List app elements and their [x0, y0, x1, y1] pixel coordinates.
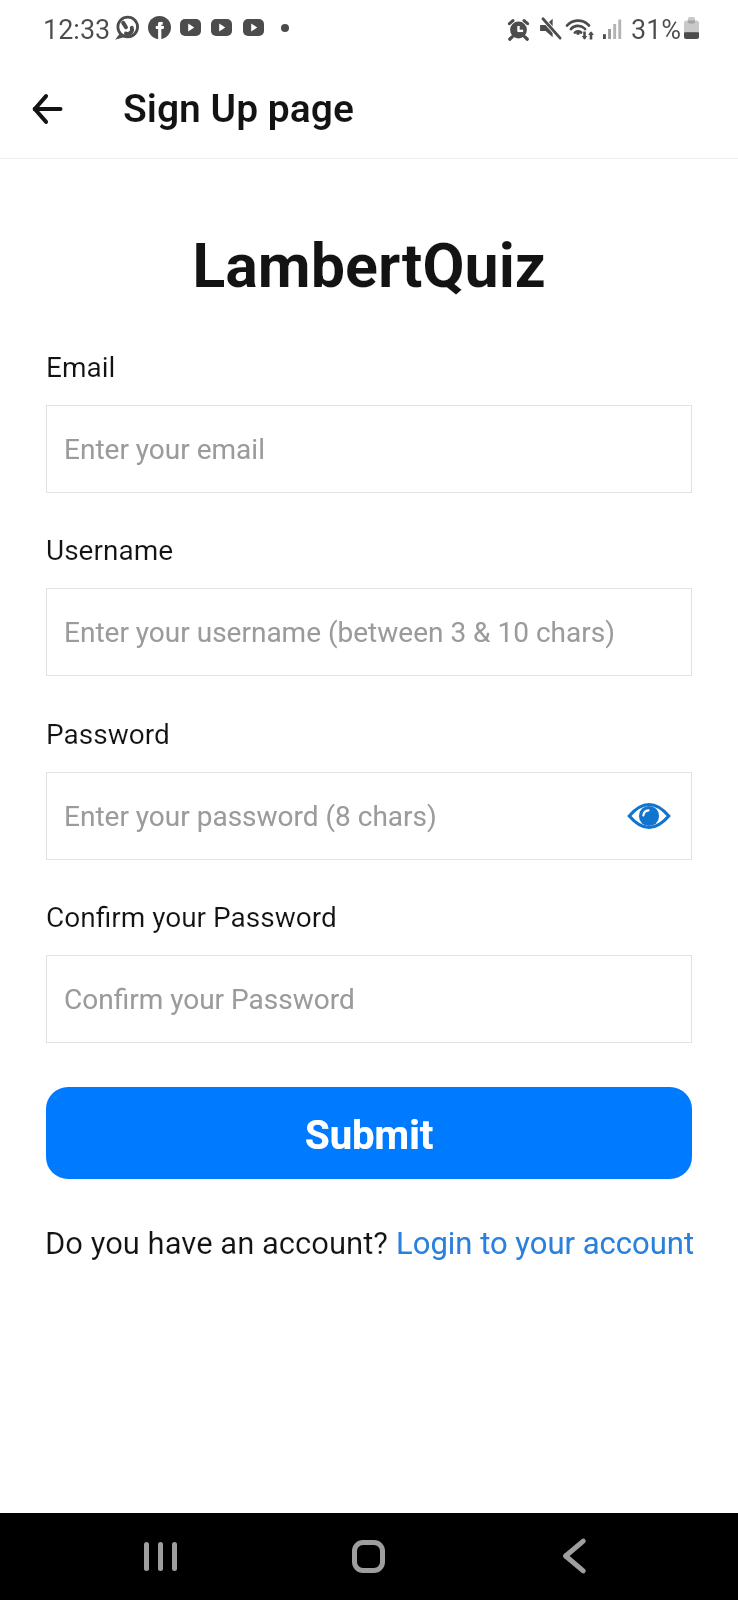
button[interactable]: Back: [534, 1516, 614, 1596]
staticText: Username: [46, 534, 174, 567]
button[interactable]: Show password: [620, 787, 678, 845]
staticText: Password: [46, 718, 170, 751]
button[interactable]: Home: [328, 1516, 408, 1596]
staticText: Login to your account: [396, 1225, 695, 1261]
staticText: Enter your email: [64, 433, 265, 466]
button[interactable]: Recent apps: [120, 1516, 200, 1596]
button[interactable]: Enter your password (8 chars): [46, 772, 692, 860]
button[interactable]: Submit: [46, 1087, 692, 1179]
button[interactable]: Confirm your Password: [46, 955, 692, 1043]
button[interactable]: Back: [18, 80, 76, 138]
staticText: Email: [46, 351, 116, 384]
staticText: Enter your password (8 chars): [64, 800, 437, 833]
staticText: Sign Up page: [123, 86, 354, 132]
button[interactable]: Enter your email: [46, 405, 692, 493]
staticText: Enter your username (between 3 & 10 char…: [64, 616, 615, 649]
staticText: 12:33: [43, 14, 111, 46]
staticText: 31%: [631, 14, 682, 46]
button[interactable]: Login to your account: [396, 1219, 695, 1267]
staticText: LambertQuiz: [0, 230, 738, 301]
staticText: Confirm your Password: [64, 983, 355, 1016]
staticText: Do you have an account?: [45, 1225, 396, 1261]
button[interactable]: Enter your username (between 3 & 10 char…: [46, 588, 692, 676]
staticText: Confirm your Password: [46, 901, 337, 934]
staticText: Submit: [305, 1112, 434, 1159]
